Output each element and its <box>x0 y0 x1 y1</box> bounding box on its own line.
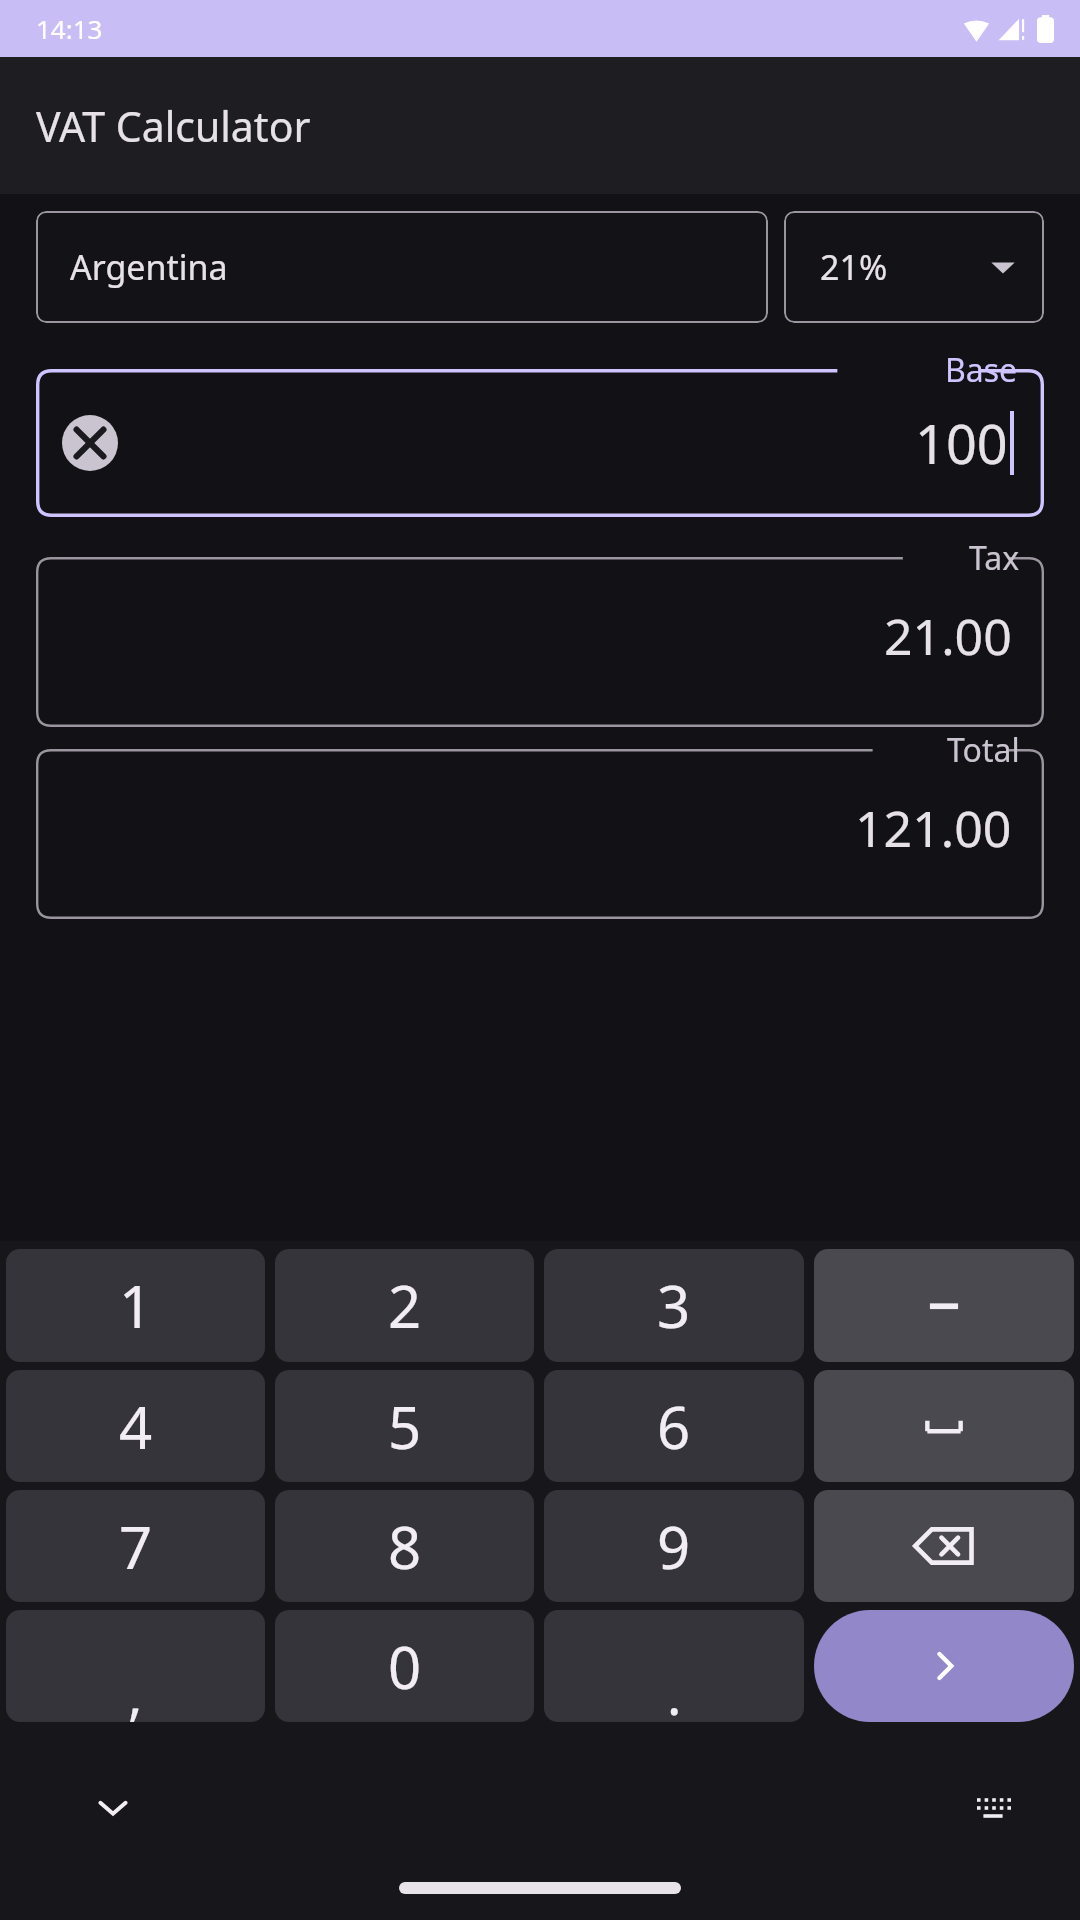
button[interactable]: 9 <box>544 1490 804 1602</box>
button[interactable]: 21% <box>784 211 1044 323</box>
button[interactable]: 8 <box>275 1490 534 1602</box>
staticText: Total <box>947 728 1020 772</box>
staticText: . <box>667 1657 682 1722</box>
button[interactable]: Backspace <box>814 1490 1074 1602</box>
staticText: 2 <box>388 1266 422 1345</box>
button[interactable]: Clear <box>62 415 118 471</box>
button[interactable]: 0 <box>275 1610 534 1722</box>
staticText: 8 <box>388 1507 422 1586</box>
button[interactable]: 7 <box>6 1490 265 1602</box>
staticText: 0 <box>388 1627 422 1706</box>
button[interactable]: 4 <box>6 1370 265 1482</box>
button[interactable]: , <box>6 1610 265 1722</box>
button[interactable]: 5 <box>275 1370 534 1482</box>
button[interactable]: . <box>544 1610 804 1722</box>
staticText: 9 <box>657 1507 691 1586</box>
button[interactable]: Argentina <box>36 211 768 323</box>
staticText: 4 <box>119 1387 153 1466</box>
button[interactable]: Enter <box>814 1610 1074 1722</box>
button[interactable]: 6 <box>544 1370 804 1482</box>
staticText: 1 <box>119 1266 153 1345</box>
staticText: , <box>128 1657 143 1722</box>
button[interactable]: 2 <box>275 1249 534 1362</box>
staticText: VAT Calculator <box>36 98 311 154</box>
button[interactable]: Hide keyboard <box>70 1764 156 1850</box>
staticText: 21.00 <box>884 602 1012 670</box>
button[interactable]: Minus <box>814 1249 1074 1362</box>
staticText: 7 <box>119 1507 153 1586</box>
staticText: Tax <box>969 536 1020 580</box>
staticText: Argentina <box>70 244 228 290</box>
button[interactable]: 1 <box>6 1249 265 1362</box>
button[interactable]: Space <box>814 1370 1074 1482</box>
button[interactable]: Base <box>36 369 1044 517</box>
button[interactable]: 3 <box>544 1249 804 1362</box>
staticText: 100 <box>915 406 1008 480</box>
staticText: 3 <box>657 1266 691 1345</box>
staticText: 5 <box>388 1387 422 1466</box>
staticText: 6 <box>657 1387 691 1466</box>
button[interactable]: Change keyboard <box>950 1764 1036 1850</box>
staticText: 121.00 <box>855 794 1012 862</box>
staticText: 21% <box>820 244 888 290</box>
staticText: Base <box>945 348 1018 392</box>
staticText: 14:13 <box>36 11 103 46</box>
